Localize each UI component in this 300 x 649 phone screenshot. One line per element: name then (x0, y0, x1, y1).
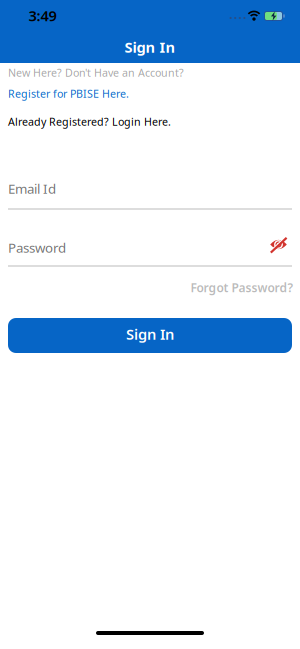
staticText: Sign In (124, 37, 175, 57)
staticText: 3:49 (28, 6, 56, 25)
staticText: Password (8, 239, 66, 256)
button[interactable]: Password (8, 239, 66, 256)
button[interactable]: Email Id (8, 180, 56, 197)
staticText: Forgot Password? (190, 279, 293, 295)
staticText: Already Registered? Login Here. (8, 114, 171, 129)
staticText: Sign In (126, 324, 174, 344)
staticText: New Here? Don't Have an Account? (8, 65, 184, 80)
button[interactable]: Forgot Password? (190, 279, 293, 295)
button[interactable]: Show password (270, 237, 287, 253)
staticText: Email Id (8, 180, 56, 197)
staticText: Register for PBISE Here. (8, 86, 129, 101)
button[interactable]: Register for PBISE Here. (8, 86, 129, 101)
button[interactable]: Sign In (8, 318, 292, 353)
